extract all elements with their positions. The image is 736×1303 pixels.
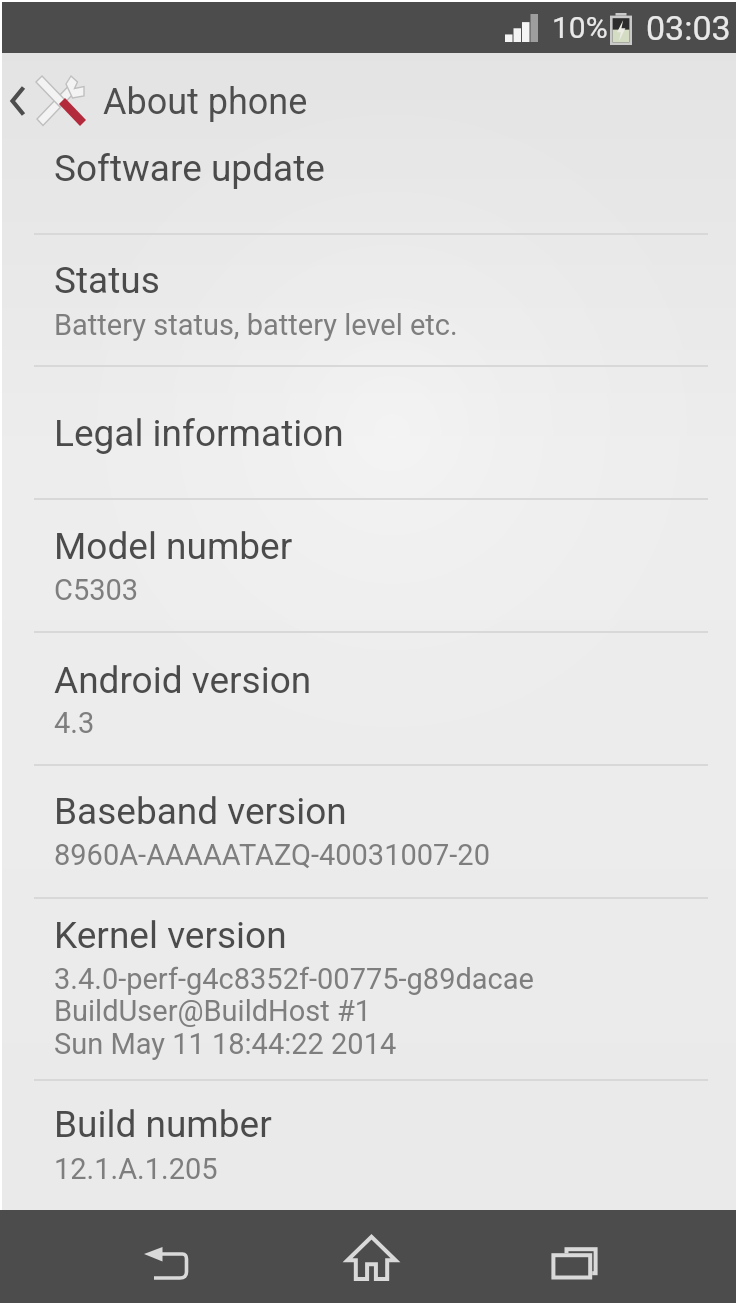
button[interactable]: Home (273, 1210, 469, 1303)
button[interactable] (0, 897, 736, 1079)
button[interactable] (0, 764, 736, 898)
staticText: 4.3 (54, 706, 95, 740)
staticText: C5303 (54, 573, 139, 607)
button[interactable] (0, 233, 736, 365)
button[interactable] (0, 141, 736, 233)
staticText: About phone (103, 81, 308, 123)
staticText: Build number (54, 1103, 272, 1146)
staticText: 03:03 (646, 8, 731, 48)
staticText: Android version (54, 659, 312, 702)
staticText: 3.4.0-perf-g4c8352f-00775-g89dacae (54, 962, 534, 996)
staticText: 8960A-AAAAATAZQ-40031007-20 (54, 838, 490, 872)
button[interactable] (0, 365, 736, 498)
staticText: Battery status, battery level etc. (54, 308, 458, 342)
staticText: 10% (552, 10, 608, 45)
staticText: BuildUser@BuildHost #1 (54, 994, 372, 1028)
button[interactable]: About phone (0, 53, 736, 141)
button[interactable] (0, 631, 736, 764)
button[interactable]: Back (67, 1210, 263, 1303)
staticText: Status (54, 259, 160, 302)
button[interactable]: Recent apps (477, 1210, 673, 1303)
staticText: Baseband version (54, 790, 347, 833)
staticText: Model number (54, 525, 293, 568)
button[interactable] (0, 1079, 736, 1211)
staticText: Legal information (54, 412, 344, 455)
staticText: Software update (54, 147, 325, 190)
staticText: Kernel version (54, 914, 287, 957)
button[interactable] (0, 498, 736, 632)
staticText: Sun May 11 18:44:22 2014 (54, 1027, 397, 1061)
staticText: 12.1.A.1.205 (54, 1152, 218, 1186)
